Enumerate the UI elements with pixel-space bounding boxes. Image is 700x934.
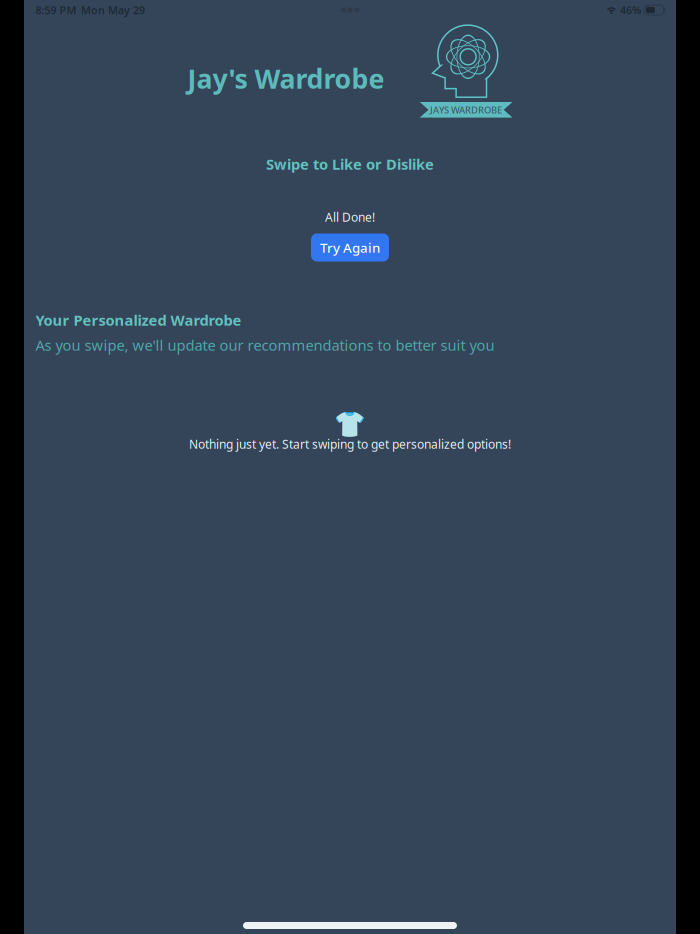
staticText: Jay's Wardrobe <box>187 61 384 96</box>
staticText: Your Personalized Wardrobe <box>35 310 241 330</box>
staticText: Mon May 29 <box>81 3 145 17</box>
staticText: Try Again <box>320 239 380 256</box>
staticText: 👕 <box>334 409 366 438</box>
staticText: 8:59 PM <box>35 3 76 17</box>
staticText: Swipe to Like or Dislike <box>266 154 434 174</box>
staticText: Nothing just yet. Start swiping to get p… <box>189 436 511 452</box>
staticText: As you swipe, we'll update our recommend… <box>35 335 494 355</box>
staticText: 46% <box>620 3 641 17</box>
button[interactable]: Try Again <box>311 233 389 261</box>
staticText: JAYS WARDROBE <box>430 104 502 116</box>
staticText: All Done! <box>325 209 375 225</box>
